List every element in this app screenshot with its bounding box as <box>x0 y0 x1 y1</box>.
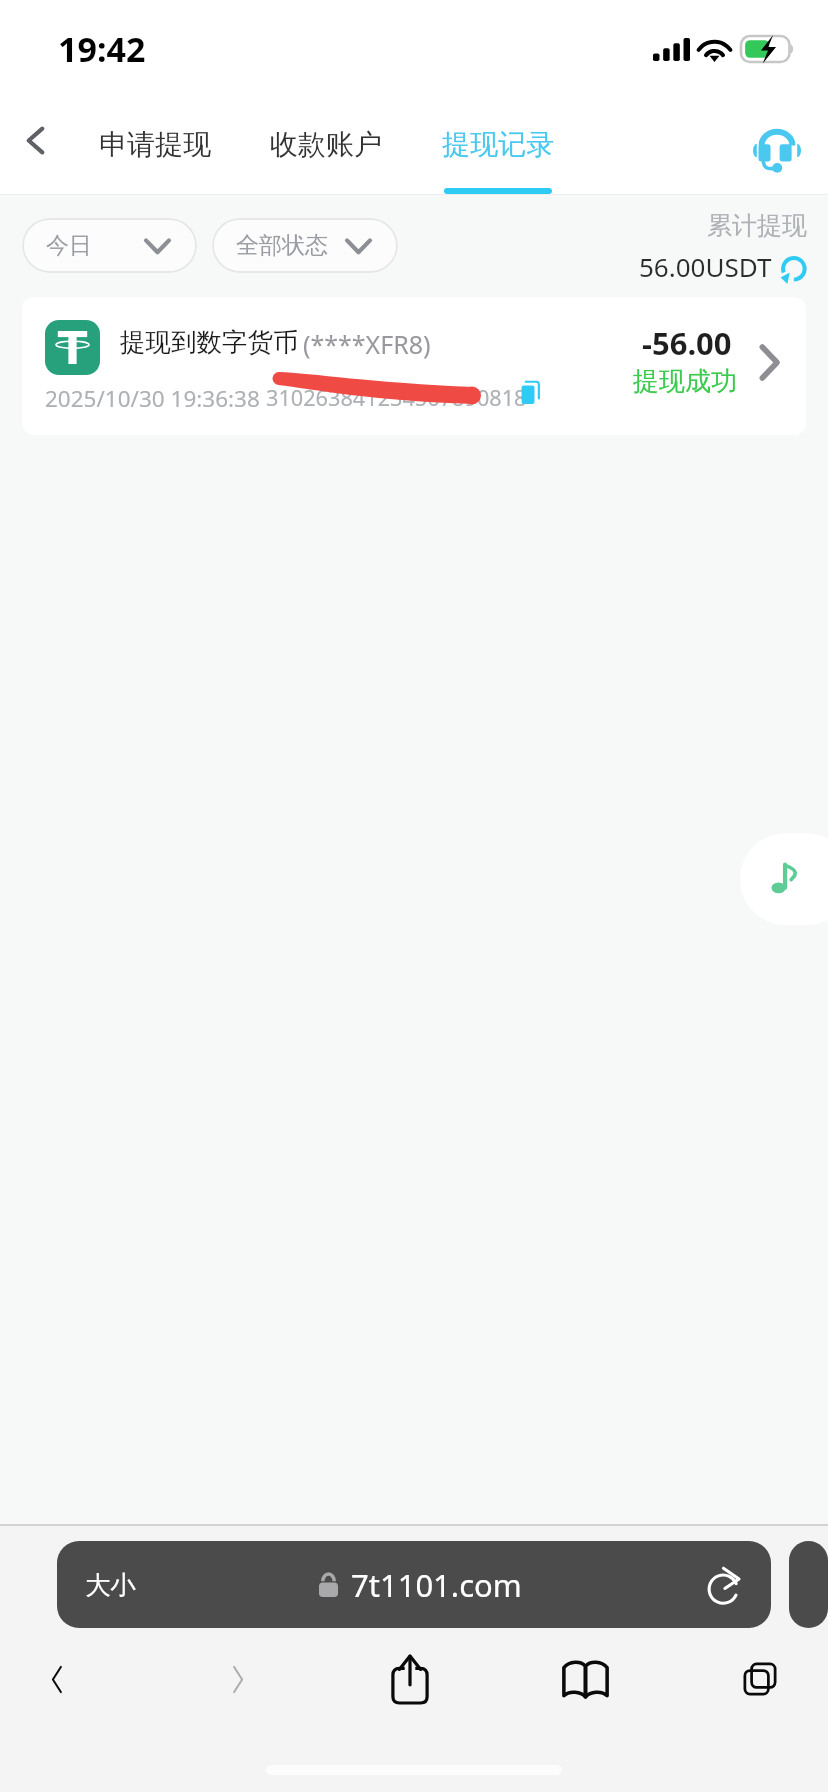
button[interactable]: Music <box>740 833 828 925</box>
button[interactable]: Back <box>5 110 65 170</box>
button[interactable]: Customer service <box>744 115 810 181</box>
staticText: 今日 <box>46 231 92 260</box>
staticText: 申请提现 <box>99 127 211 162</box>
staticText: -56.00 <box>642 322 732 364</box>
button[interactable]: 今日 <box>22 218 197 273</box>
staticText: 19:42 <box>58 26 146 72</box>
button[interactable]: 提现到数字货币 <box>22 297 806 435</box>
staticText: 提现记录 <box>442 127 554 162</box>
staticText: 累计提现 <box>707 210 807 241</box>
staticText: 2025/10/30 19:36:38 <box>45 383 260 414</box>
button[interactable]: Reload <box>705 1565 745 1605</box>
button[interactable]: Bookmarks <box>546 1640 624 1718</box>
button[interactable]: Tabs <box>721 1640 799 1718</box>
button[interactable]: Copy <box>512 374 548 410</box>
staticText: 310263841234567890818 <box>266 383 527 413</box>
button[interactable]: 申请提现 <box>90 98 220 194</box>
button[interactable]: Back <box>18 1640 96 1718</box>
staticText: (****XFR8) <box>303 327 431 361</box>
staticText: 56.00USDT <box>639 249 772 284</box>
staticText: 全部状态 <box>236 231 328 260</box>
staticText: 提现到数字货币 <box>120 326 299 358</box>
staticText: 提现成功 <box>633 365 737 398</box>
button[interactable]: 提现记录 <box>433 98 563 194</box>
button[interactable]: Forward <box>198 1640 276 1718</box>
button[interactable]: Share <box>371 1640 449 1718</box>
staticText: 收款账户 <box>270 127 382 162</box>
button[interactable]: Next tab <box>789 1541 828 1628</box>
button[interactable]: 收款账户 <box>261 98 391 194</box>
button[interactable]: 全部状态 <box>212 218 398 273</box>
button[interactable]: 大小 <box>57 1541 771 1628</box>
button[interactable]: Refresh <box>771 248 813 290</box>
staticText: 大小 <box>85 1569 136 1601</box>
button[interactable]: Details <box>746 339 792 385</box>
staticText: 7t1101.com <box>351 1564 522 1606</box>
